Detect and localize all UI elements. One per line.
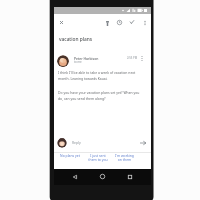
button[interactable]: Reply xyxy=(54,134,151,151)
staticText: Peter Harbison xyxy=(74,56,99,61)
button[interactable]: Send xyxy=(126,16,138,28)
other: Send reply xyxy=(138,138,147,147)
staticText: Do you have your vacation plans set yet?… xyxy=(58,90,140,101)
button[interactable]: Attach file xyxy=(101,17,113,29)
staticText: No plans yet xyxy=(60,153,80,158)
button[interactable]: Schedule send xyxy=(113,16,125,28)
button[interactable]: Recent apps xyxy=(123,170,136,183)
staticText: I just sent them to you xyxy=(88,153,108,162)
button[interactable]: Close xyxy=(55,16,67,28)
button[interactable]: I'm working on them xyxy=(111,153,138,166)
staticText: Reply xyxy=(72,140,81,145)
staticText: to me xyxy=(74,60,82,64)
staticText: I'm working on them xyxy=(115,153,134,162)
button[interactable]: More options xyxy=(139,17,150,28)
button[interactable]: Back xyxy=(68,170,81,183)
button[interactable]: No plans yet xyxy=(56,153,84,166)
staticText: I think I'll be able to take a week of v… xyxy=(58,70,140,81)
button[interactable]: Message options xyxy=(137,54,146,63)
button[interactable]: I just sent them to you xyxy=(84,153,111,166)
staticText: 2:55 PM xyxy=(127,56,138,60)
button[interactable]: Home xyxy=(96,170,109,183)
staticText: vacation plans xyxy=(59,36,93,43)
